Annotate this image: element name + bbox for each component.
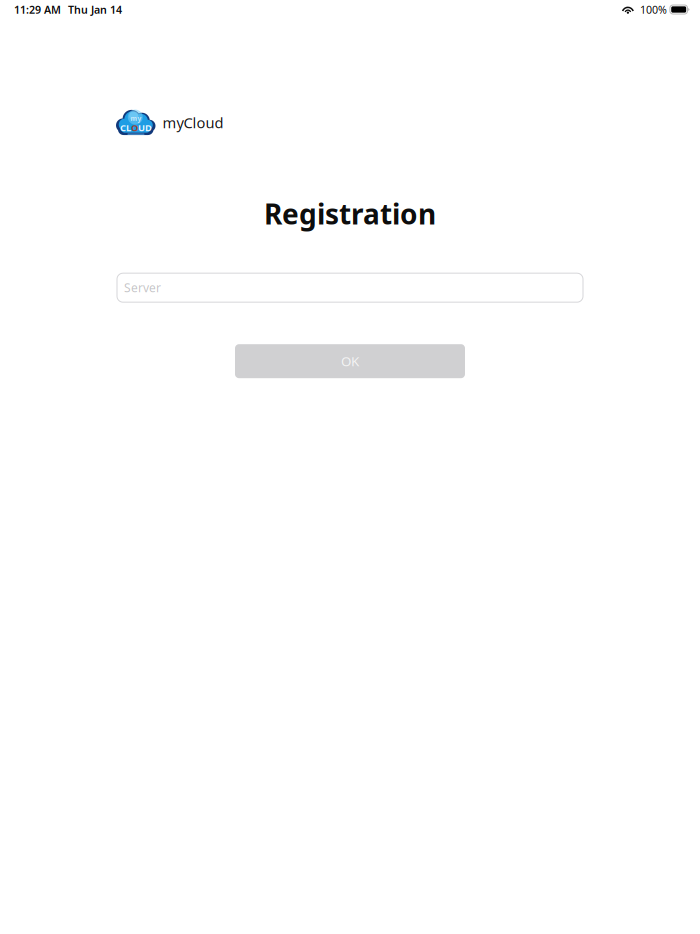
staticText: Server [124, 280, 161, 296]
staticText: Thu Jan 14 [68, 2, 122, 17]
button[interactable]: Server [117, 273, 583, 302]
staticText: 11:29 AM [14, 2, 61, 17]
staticText: myCloud [162, 113, 223, 132]
staticText: UD [138, 121, 152, 134]
button[interactable]: OK [235, 344, 465, 378]
staticText: my [130, 114, 141, 123]
staticText: O [131, 121, 138, 134]
staticText: CL [120, 121, 131, 134]
staticText: OK [341, 352, 359, 370]
staticText: 100% [640, 2, 667, 17]
staticText: Registration [264, 195, 436, 232]
